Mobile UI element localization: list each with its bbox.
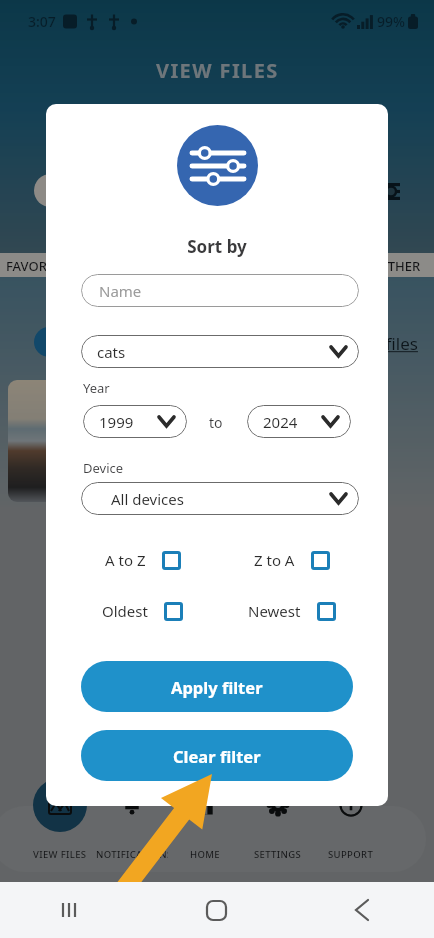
button[interactable]: SUPPORT (314, 778, 387, 872)
button[interactable]: Clear filter (81, 730, 353, 781)
button[interactable]: SETTINGS (241, 778, 314, 872)
staticText: Sample files (322, 332, 418, 355)
staticText: Clear filter (173, 745, 261, 767)
staticText: 2024 (263, 412, 298, 432)
button[interactable]: Filter (382, 183, 400, 200)
staticText: VIEW FILES (156, 57, 279, 84)
button[interactable]: cats (81, 335, 359, 368)
button[interactable]: Newest (217, 601, 366, 621)
staticText: 99% (377, 12, 405, 31)
staticText: OTHER (378, 257, 421, 275)
button[interactable]: NOTIFICATIONS (96, 778, 168, 872)
button[interactable]: Oldest (68, 601, 217, 621)
staticText: A to Z (105, 550, 146, 570)
button[interactable]: Apply filter (81, 661, 353, 712)
staticText: 3:07 (28, 12, 56, 31)
button[interactable]: Name (81, 274, 359, 307)
staticText: Newest (248, 601, 301, 621)
staticText: NOTIFICATIONS (96, 848, 168, 861)
staticText: Z to A (254, 550, 295, 570)
button[interactable]: 1999 (83, 405, 187, 438)
button[interactable]: HOME (168, 778, 241, 872)
staticText: Apply filter (171, 676, 263, 698)
staticText: All devices (111, 489, 184, 509)
staticText: to (209, 413, 223, 432)
staticText: Name (99, 281, 142, 301)
button[interactable]: All devices (81, 482, 359, 515)
button[interactable]: A to Z (68, 550, 217, 570)
staticText: SETTINGS (254, 848, 302, 861)
staticText: 1999 (99, 412, 134, 432)
button[interactable]: 2024 (247, 405, 351, 438)
staticText: Oldest (102, 601, 148, 621)
staticText: HOME (190, 848, 220, 861)
staticText: VIEW FILES (33, 848, 87, 861)
button[interactable]: VIEW FILES (24, 778, 96, 872)
staticText: Device (83, 459, 124, 477)
staticText: FAVORITES (6, 257, 74, 275)
staticText: cats (97, 342, 126, 362)
staticText: Year (83, 379, 110, 397)
button[interactable]: Z to A (217, 550, 366, 570)
staticText: Sort by (46, 235, 388, 258)
staticText: SUPPORT (328, 848, 374, 861)
